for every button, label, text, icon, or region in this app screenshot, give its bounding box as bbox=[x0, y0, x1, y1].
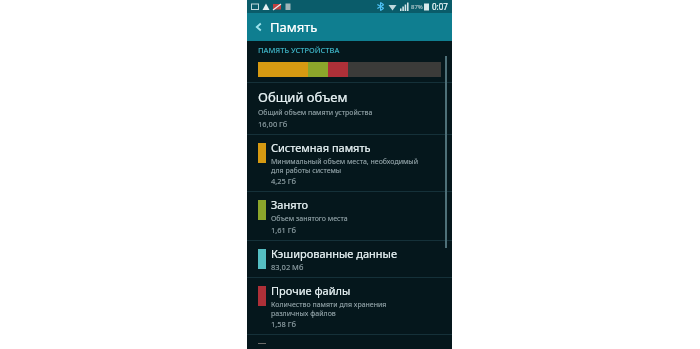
staticText: 1,61 Гб bbox=[271, 225, 296, 235]
button[interactable]: Занято bbox=[247, 191, 452, 240]
staticText: Минимальный объем места, необходимый для… bbox=[271, 157, 419, 175]
staticText: ПАМЯТЬ УСТРОЙСТВА bbox=[258, 45, 340, 55]
staticText: Количество памяти для хранения различных… bbox=[271, 300, 387, 318]
staticText: 87% bbox=[411, 3, 423, 11]
staticText: 0:07 bbox=[432, 1, 448, 12]
button[interactable]: Общий объем bbox=[247, 82, 452, 134]
staticText: Общий объем bbox=[258, 88, 348, 106]
staticText: Прочие файлы bbox=[271, 283, 351, 298]
staticText: 4,25 Гб bbox=[271, 176, 296, 186]
button[interactable]: Прочие файлы bbox=[247, 277, 452, 334]
staticText: Занято bbox=[271, 197, 309, 212]
staticText: 1,58 Гб bbox=[271, 319, 296, 329]
button[interactable]: Back bbox=[247, 13, 452, 41]
staticText: Объем занятого места bbox=[271, 214, 348, 224]
button[interactable]: Системная память bbox=[247, 134, 452, 191]
staticText: Системная память bbox=[271, 140, 371, 155]
staticText: Кэшированные данные bbox=[271, 246, 398, 261]
staticText: 16,00 Гб bbox=[258, 119, 288, 129]
button[interactable]: Кэшированные данные bbox=[247, 240, 452, 277]
staticText: Общий объем памяти устройства bbox=[258, 108, 373, 118]
button[interactable]: Доступное место bbox=[247, 334, 452, 349]
staticText: 83,02 Мб bbox=[271, 262, 304, 272]
staticText: Память bbox=[270, 18, 318, 36]
